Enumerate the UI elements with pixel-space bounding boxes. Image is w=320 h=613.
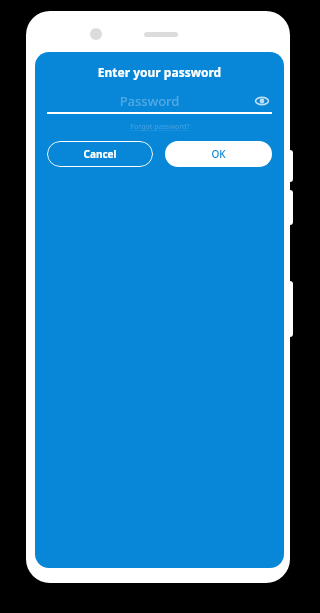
staticText: Enter your password <box>35 64 284 80</box>
button[interactable]: Password <box>47 90 272 112</box>
button[interactable]: Forgot password? <box>126 121 194 133</box>
staticText: Password <box>47 92 252 110</box>
button[interactable]: Show password <box>252 91 272 111</box>
button[interactable]: OK <box>165 141 272 167</box>
staticText: OK <box>211 147 226 161</box>
staticText: Cancel <box>83 147 117 161</box>
button[interactable]: Cancel <box>47 141 153 167</box>
